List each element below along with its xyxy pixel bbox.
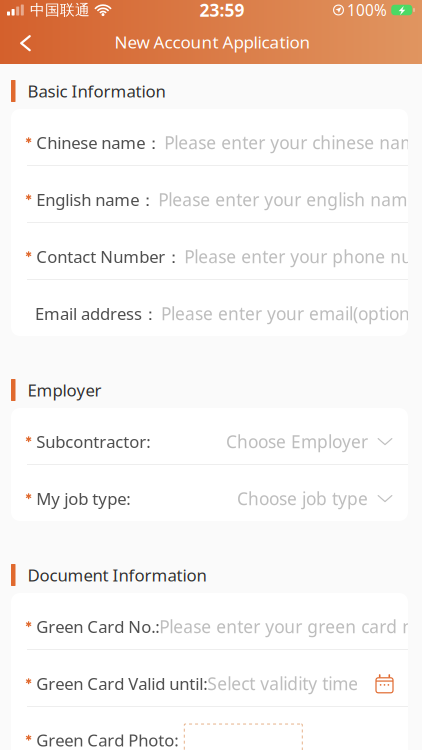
staticText: Green Card No.: — [36, 615, 159, 638]
staticText: Document Information — [27, 564, 206, 586]
staticText: Choose Employer — [226, 430, 368, 453]
button[interactable]: Upload Green Card Photo — [184, 724, 302, 750]
button[interactable]: Back — [0, 20, 44, 64]
staticText: Basic Information — [27, 80, 165, 102]
staticText: Please enter your green card no. — [159, 615, 422, 638]
staticText: Please enter your email(optional) — [161, 302, 422, 325]
staticText: My job type: — [36, 487, 130, 510]
staticText: Please enter your phone number — [184, 245, 422, 268]
staticText: Chinese name： — [36, 131, 162, 154]
staticText: Choose job type — [237, 487, 368, 510]
staticText: 中国联通 — [30, 1, 90, 19]
staticText: Please enter your english name — [158, 188, 417, 211]
staticText: Green Card Valid until: — [36, 672, 207, 695]
staticText: Contact Number： — [36, 245, 182, 268]
staticText: New Account Application — [114, 30, 310, 54]
staticText: Green Card Photo: — [36, 729, 178, 750]
staticText: 23:59 — [199, 0, 244, 22]
staticText: Please enter your chinese name — [164, 131, 422, 154]
staticText: English name： — [36, 188, 156, 211]
staticText: 100% — [347, 0, 387, 20]
staticText: Email address： — [35, 302, 159, 325]
staticText: Employer — [27, 379, 101, 401]
staticText: Select validity time — [207, 672, 358, 695]
staticText: Subcontractor: — [36, 430, 150, 453]
